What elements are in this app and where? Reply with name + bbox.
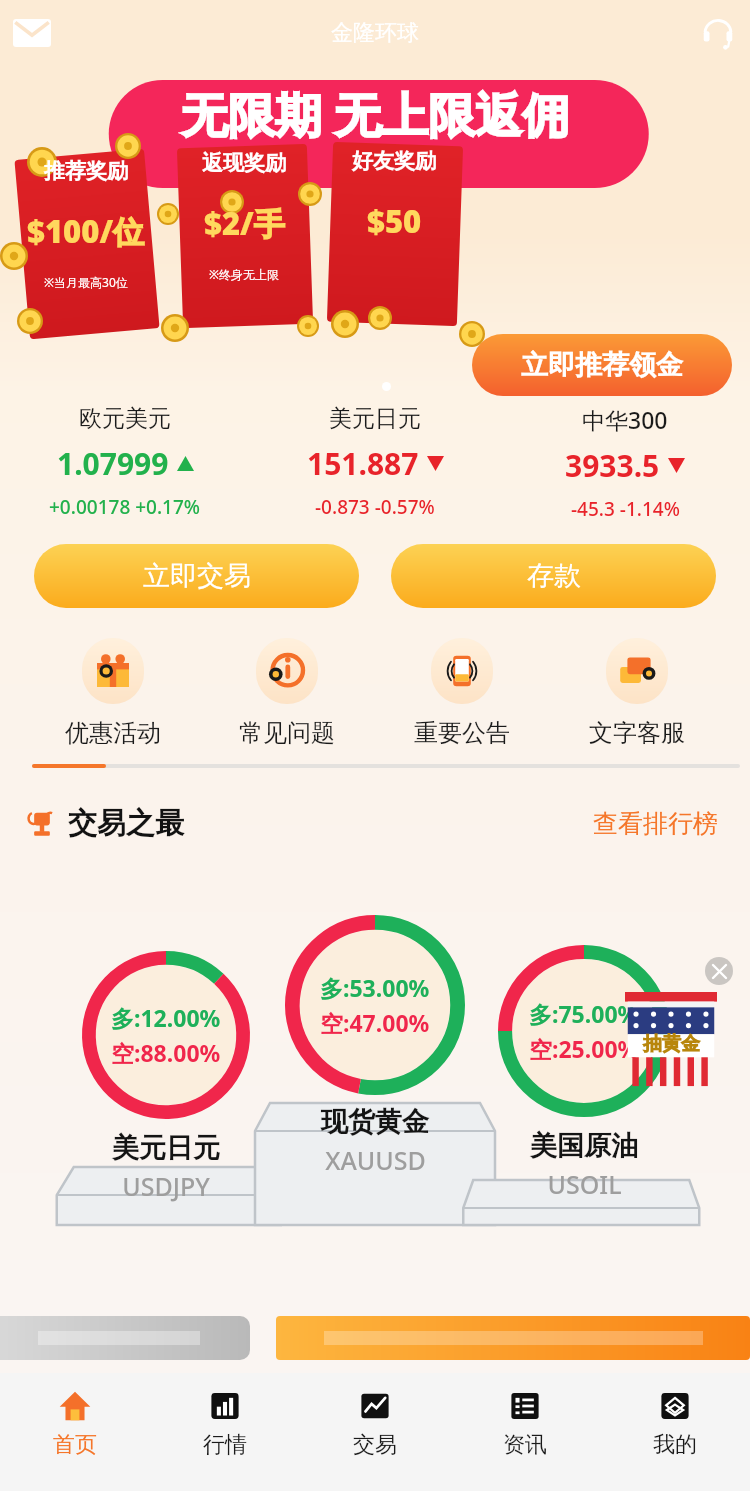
- button[interactable]: 我的: [600, 1373, 750, 1491]
- staticText: 交易: [353, 1431, 397, 1459]
- staticText: 文字客服: [589, 718, 685, 748]
- staticText: 1.07999: [57, 443, 169, 484]
- staticText: XAUUSD: [325, 1143, 426, 1177]
- staticText: 返现奖励: [202, 150, 286, 176]
- button[interactable]: 优惠活动: [26, 638, 200, 748]
- button[interactable]: Messages: [8, 9, 56, 57]
- staticText: ※终身无上限: [209, 266, 280, 282]
- staticText: 立即交易: [143, 559, 251, 593]
- staticText: 空:47.00%: [320, 1007, 430, 1038]
- button[interactable]: 美元日元: [250, 400, 500, 524]
- button[interactable]: 多:53.00%: [285, 915, 465, 1177]
- staticText: 查看排行榜: [593, 808, 718, 839]
- button[interactable]: 资讯: [450, 1373, 600, 1491]
- staticText: $50: [367, 200, 422, 242]
- button[interactable]: 多:12.00%: [82, 951, 250, 1203]
- staticText: 重要公告: [414, 718, 510, 748]
- staticText: 空:25.00%: [529, 1033, 639, 1064]
- staticText: 3933.5: [565, 445, 660, 486]
- staticText: 首页: [53, 1431, 97, 1459]
- staticText: ※当月最高30位: [44, 274, 128, 290]
- button[interactable]: 行情: [150, 1373, 300, 1491]
- button[interactable]: 欧元美元: [0, 400, 250, 524]
- staticText: 好友奖励: [352, 148, 436, 174]
- staticText: 优惠活动: [65, 718, 161, 748]
- staticText: 欧元美元: [79, 404, 171, 433]
- staticText: 推荐奖励: [44, 158, 128, 184]
- button[interactable]: 立即交易: [34, 544, 359, 608]
- staticText: 多:53.00%: [320, 972, 430, 1003]
- staticText: 资讯: [503, 1431, 547, 1459]
- staticText: 多:12.00%: [111, 1002, 221, 1033]
- staticText: 多:75.00%: [529, 998, 639, 1029]
- button[interactable]: 文字客服: [549, 638, 724, 748]
- button[interactable]: Close promotion: [705, 957, 733, 985]
- staticText: 行情: [203, 1431, 247, 1459]
- staticText: +0.00178 +0.17%: [49, 494, 201, 520]
- button[interactable]: Market ticker: [0, 1316, 250, 1360]
- button[interactable]: 首页: [0, 1373, 150, 1491]
- staticText: 抽黄金: [643, 1032, 700, 1056]
- staticText: $2/手: [204, 202, 285, 244]
- staticText: 我的: [653, 1431, 697, 1459]
- button[interactable]: 常见问题: [200, 638, 374, 748]
- button[interactable]: 抽黄金 promotion: [625, 992, 717, 1088]
- staticText: $100/位: [27, 210, 145, 252]
- staticText: 金隆环球: [331, 19, 419, 47]
- staticText: 现货黄金: [321, 1105, 429, 1139]
- staticText: 交易之最: [68, 805, 184, 842]
- staticText: USOIL: [547, 1167, 622, 1201]
- staticText: 美国原油: [530, 1129, 638, 1163]
- staticText: 无限期 无上限返佣: [181, 82, 570, 146]
- button[interactable]: 多:75.00%: [498, 945, 670, 1201]
- staticText: 立即推荐领金: [521, 348, 683, 382]
- staticText: 常见问题: [239, 718, 335, 748]
- button[interactable]: 立即推荐领金: [472, 334, 732, 396]
- button[interactable]: Promotion ticker: [276, 1316, 750, 1360]
- staticText: 中华300: [582, 404, 668, 435]
- staticText: 存款: [527, 559, 581, 593]
- staticText: 151.887: [307, 443, 419, 484]
- staticText: 美元日元: [112, 1131, 220, 1165]
- staticText: 美元日元: [329, 404, 421, 433]
- button[interactable]: 无限期 无上限返佣: [0, 66, 750, 386]
- button[interactable]: 查看排行榜: [589, 804, 722, 843]
- button[interactable]: Customer service: [694, 9, 742, 57]
- staticText: 空:88.00%: [111, 1037, 221, 1068]
- button[interactable]: 中华300: [500, 400, 750, 526]
- staticText: USDJPY: [122, 1169, 210, 1203]
- button[interactable]: 存款: [391, 544, 716, 608]
- staticText: -0.873 -0.57%: [315, 494, 435, 520]
- staticText: -45.3 -1.14%: [571, 496, 680, 522]
- button[interactable]: 交易: [300, 1373, 450, 1491]
- button[interactable]: 重要公告: [374, 638, 549, 748]
